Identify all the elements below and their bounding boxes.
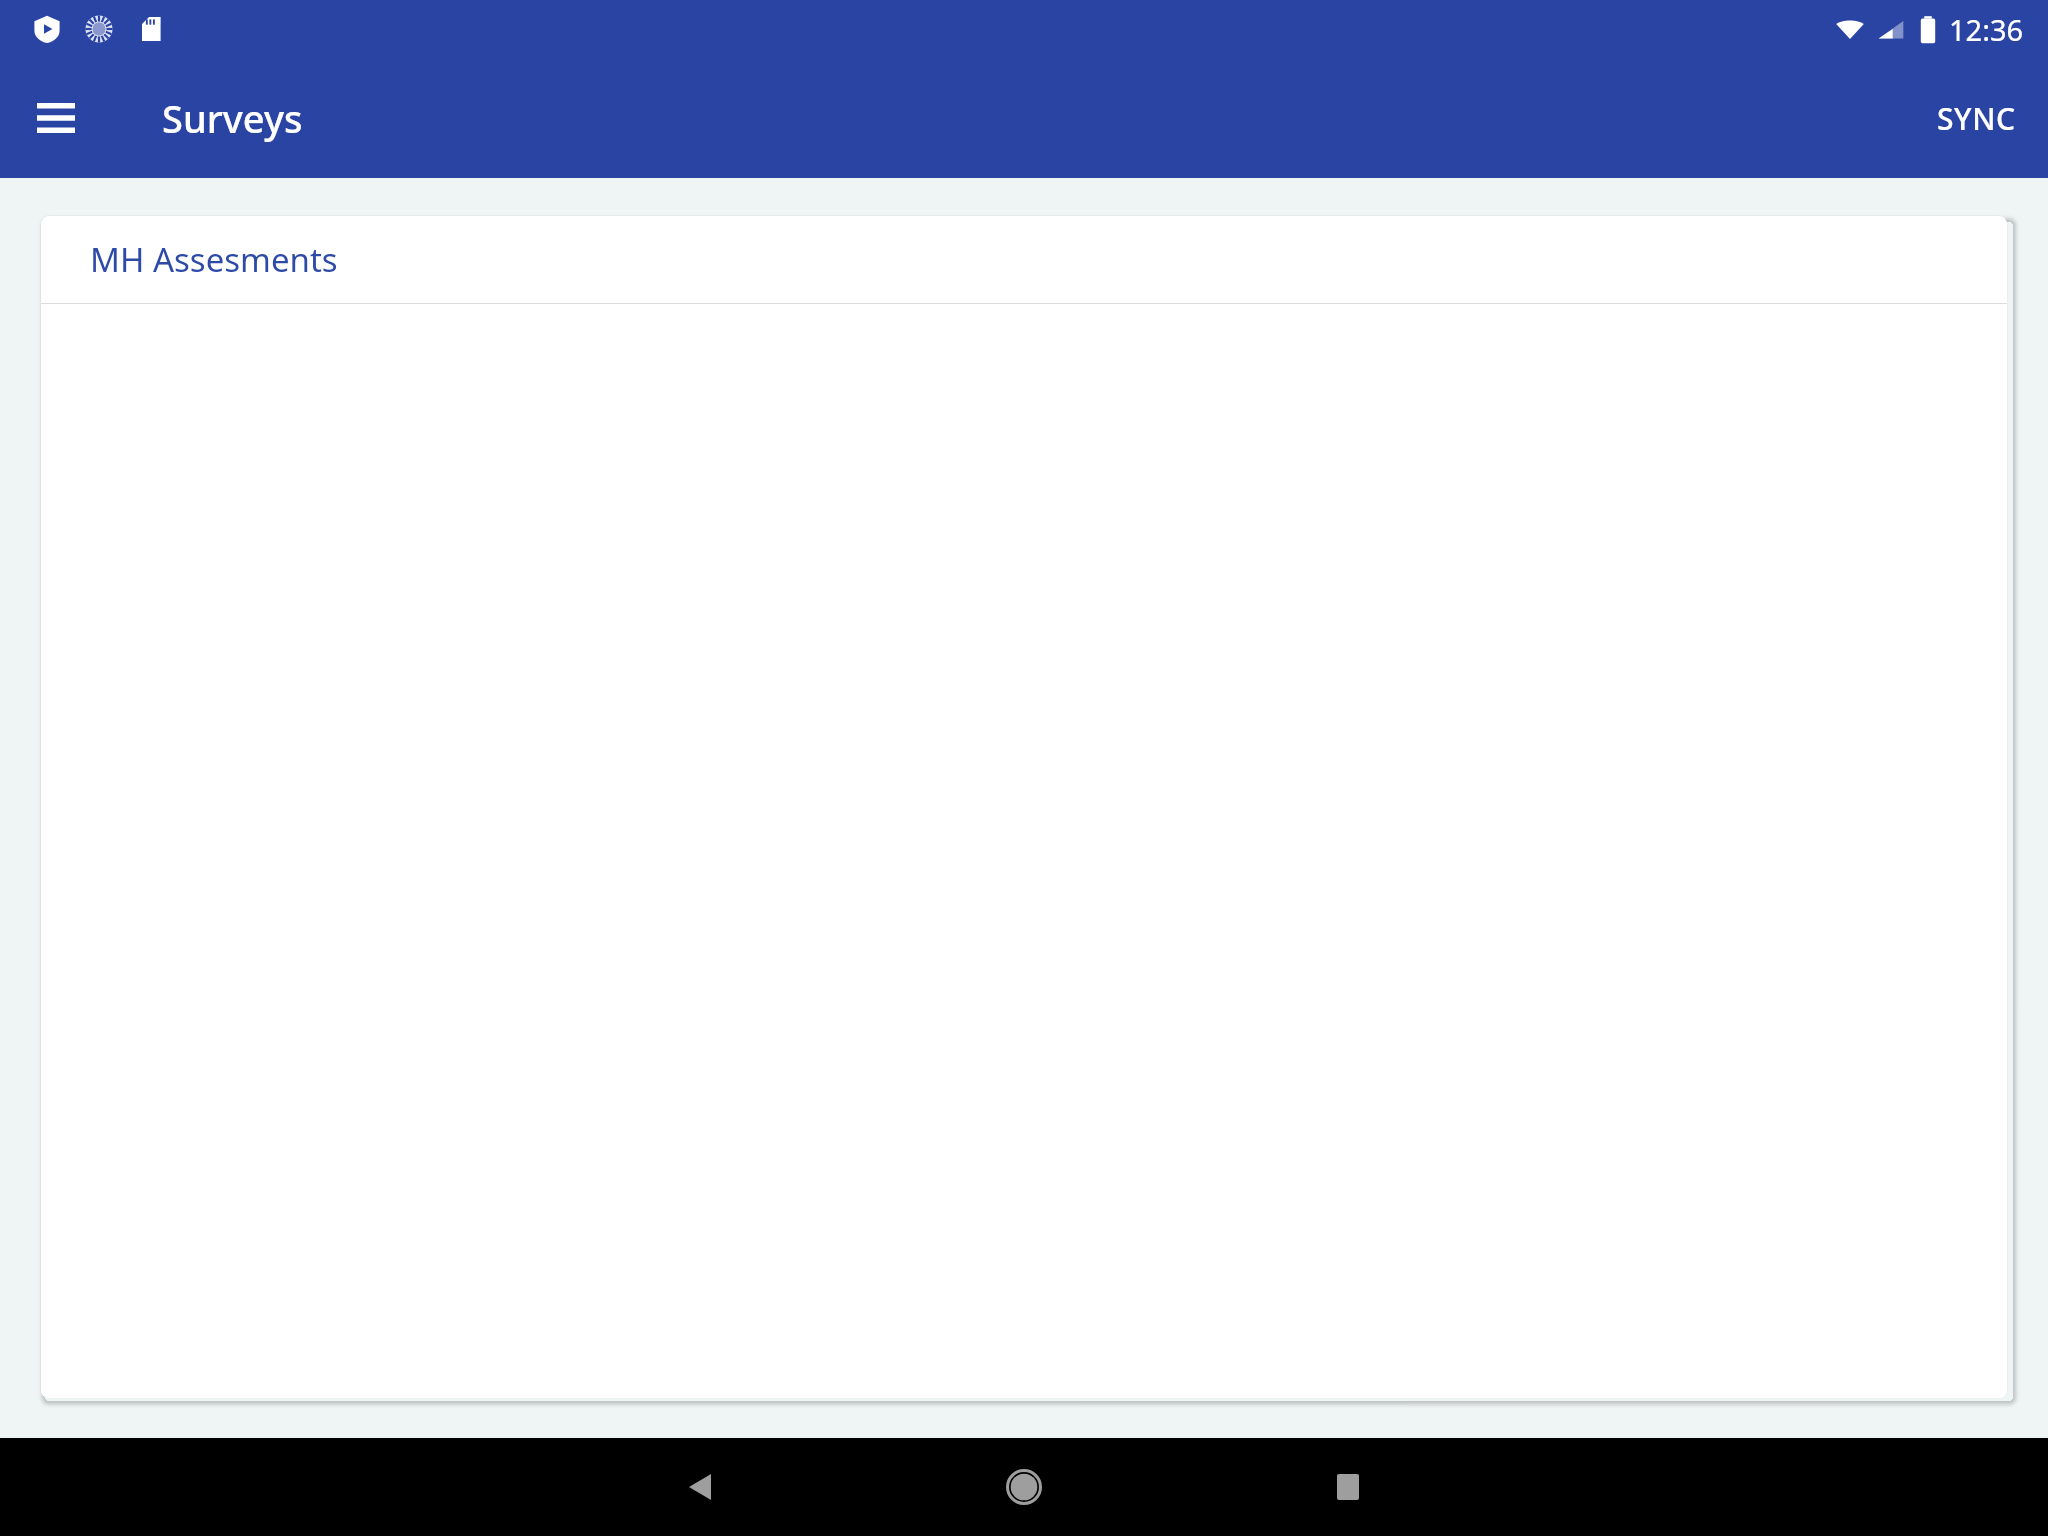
- button[interactable]: Open navigation drawer: [20, 82, 92, 154]
- button[interactable]: SYNC: [1919, 84, 2034, 153]
- button[interactable]: Home: [976, 1439, 1072, 1535]
- staticText: Surveys: [162, 92, 303, 144]
- staticText: 12:36: [1949, 10, 2024, 49]
- button[interactable]: MH Assesments: [41, 216, 2007, 303]
- button[interactable]: Back: [652, 1439, 748, 1535]
- button[interactable]: Recent apps: [1300, 1439, 1396, 1535]
- staticText: MH Assesments: [90, 237, 338, 282]
- staticText: SYNC: [1937, 98, 2016, 139]
